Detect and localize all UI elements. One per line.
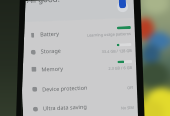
other: Storage bbox=[30, 49, 36, 55]
button[interactable]: Memory bbox=[21, 56, 138, 78]
other: Ultra data saving bbox=[32, 106, 38, 112]
button[interactable]: Battery bbox=[20, 22, 136, 43]
button[interactable]: Ultra data saving bbox=[23, 96, 139, 116]
staticText: Ultra data saving bbox=[43, 103, 87, 111]
button[interactable]: Storage bbox=[20, 39, 137, 60]
button[interactable]: Device protection bbox=[22, 74, 139, 100]
staticText: 33.4 GB / 128 GB bbox=[102, 48, 132, 54]
staticText: Learning usage patterns bbox=[87, 31, 131, 38]
staticText: All good! bbox=[26, 0, 60, 5]
staticText: Device protection bbox=[42, 84, 88, 92]
staticText: Off bbox=[127, 85, 133, 90]
staticText: 2.3 GB / 6 GB bbox=[108, 65, 133, 71]
staticText: No SIM bbox=[121, 105, 134, 110]
staticText: Memory bbox=[41, 65, 64, 72]
other: Device protection bbox=[31, 86, 37, 92]
staticText: Battery bbox=[40, 30, 59, 37]
other: Memory bbox=[30, 66, 36, 72]
other: Battery bbox=[29, 32, 35, 38]
staticText: Storage bbox=[41, 47, 62, 54]
